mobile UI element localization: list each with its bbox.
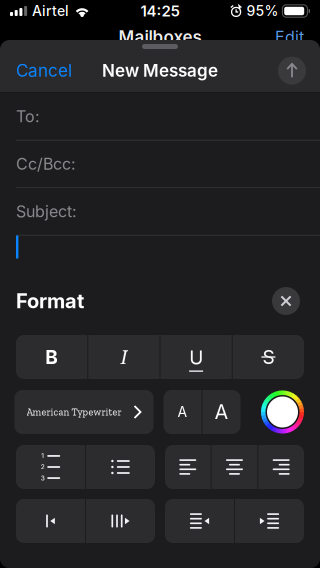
button[interactable]: Align Right bbox=[258, 445, 304, 489]
staticText: I bbox=[120, 344, 127, 370]
button[interactable]: Increase Font Size bbox=[202, 390, 240, 434]
staticText: Mailboxes bbox=[118, 27, 201, 47]
staticText: 1 bbox=[41, 452, 44, 460]
button[interactable]: Italic bbox=[88, 335, 159, 379]
button[interactable]: Right to Left bbox=[16, 499, 85, 543]
staticText: U bbox=[189, 346, 203, 369]
button[interactable]: Decrease Indent bbox=[165, 499, 234, 543]
button[interactable]: Bold bbox=[16, 335, 87, 379]
staticText: To: bbox=[16, 107, 40, 126]
staticText: American Typewriter bbox=[26, 406, 121, 418]
staticText: 95% bbox=[246, 2, 278, 19]
staticText: Edit bbox=[275, 27, 304, 47]
button[interactable]: Numbered List bbox=[16, 445, 85, 489]
button[interactable]: Align Left bbox=[165, 445, 211, 489]
staticText: A bbox=[177, 403, 187, 420]
button[interactable]: Align Center bbox=[212, 445, 257, 489]
staticText: Format bbox=[16, 289, 84, 313]
staticText: A bbox=[214, 400, 228, 424]
button[interactable]: Increase Indent bbox=[235, 499, 304, 543]
staticText: Airtel bbox=[32, 2, 69, 19]
staticText: Cc/Bcc: bbox=[16, 154, 76, 174]
staticText: S bbox=[262, 345, 274, 368]
staticText: B bbox=[45, 345, 58, 368]
button[interactable]: Text Color bbox=[259, 389, 305, 435]
button[interactable]: Cancel bbox=[10, 51, 78, 90]
staticText: 14:25 bbox=[140, 2, 179, 20]
button[interactable]: Decrease Font Size bbox=[163, 390, 201, 434]
button[interactable]: Underline bbox=[160, 335, 232, 379]
button[interactable]: Close Format bbox=[268, 283, 304, 319]
button[interactable]: American Typewriter bbox=[14, 390, 153, 434]
staticText: New Message bbox=[102, 60, 218, 81]
button[interactable]: Left to Right bbox=[86, 499, 155, 543]
button[interactable]: Strikethrough bbox=[233, 335, 304, 379]
staticText: Cancel bbox=[16, 60, 72, 81]
button[interactable]: Send bbox=[274, 53, 310, 89]
staticText: 3 bbox=[41, 474, 45, 482]
button[interactable]: Bulleted List bbox=[86, 445, 155, 489]
staticText: 2 bbox=[41, 463, 45, 471]
staticText: Subject: bbox=[16, 202, 77, 221]
